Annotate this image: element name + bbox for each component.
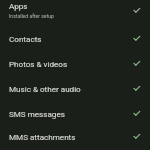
staticText: SMS messages [9, 109, 65, 118]
other: SMS messages selected [126, 108, 144, 120]
button[interactable]: MMS attachments [0, 126, 150, 147]
button[interactable]: Contacts [0, 26, 150, 51]
staticText: Installed after setup [9, 13, 54, 19]
staticText: Apps [9, 1, 28, 10]
button[interactable]: SMS messages [0, 101, 150, 126]
other: MMS attachments selected [126, 131, 144, 143]
staticText: Contacts [9, 34, 42, 43]
staticText: Music & other audio [9, 84, 81, 93]
button[interactable]: Photos & videos [0, 51, 150, 76]
staticText: MMS attachments [9, 132, 76, 141]
other: Music & other audio selected [126, 83, 144, 95]
button[interactable]: Apps [0, 0, 150, 26]
other: Photos & videos selected [126, 58, 144, 70]
other: Contacts selected [126, 33, 144, 45]
staticText: Photos & videos [9, 59, 68, 68]
button[interactable]: Music & other audio [0, 76, 150, 101]
other: Apps selected [126, 5, 144, 17]
